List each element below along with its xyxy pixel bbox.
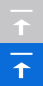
button[interactable]: Upload — [0, 0, 43, 43]
button[interactable]: Upload, selected — [0, 43, 43, 86]
